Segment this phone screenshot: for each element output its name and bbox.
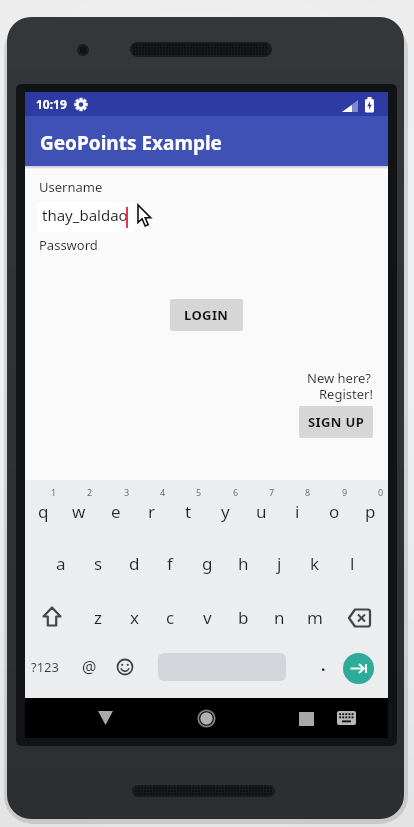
staticText: u [256,500,267,523]
staticText: 8 [305,486,311,498]
staticText: n [274,606,285,629]
staticText: j [277,552,282,575]
staticText: New here? [307,369,371,387]
staticText: i [295,500,300,523]
staticText: Register! [319,385,373,403]
staticText: 0 [378,486,384,498]
staticText: l [350,552,355,575]
staticText: r [148,500,156,523]
staticText: 7 [269,486,275,498]
staticText: 5 [196,486,202,498]
staticText: s [94,552,103,575]
button[interactable] [336,710,358,727]
staticText: Username [39,178,103,196]
staticText: b [238,606,249,629]
staticText: x [130,606,139,629]
staticText: f [167,552,173,575]
staticText: k [310,552,320,575]
staticText: t [185,500,192,523]
staticText: o [329,500,340,523]
staticText: Password [39,236,98,254]
staticText: 6 [233,486,239,498]
button[interactable]: LOGIN [170,299,243,331]
staticText: d [129,552,140,575]
staticText: e [111,500,121,523]
staticText: thay_baldao [42,205,128,225]
button[interactable]: q [25,480,388,698]
staticText: 4 [160,486,166,498]
staticText: GeoPoints Example [40,130,222,156]
staticText: q [38,500,49,523]
staticText: 10:19 [36,96,67,112]
staticText: @ [82,656,97,678]
staticText: c [166,606,175,629]
staticText: . [321,654,326,676]
button[interactable]: SIGN UP [299,406,373,438]
staticText: 9 [342,486,348,498]
button[interactable] [88,708,124,728]
staticText: a [56,552,66,575]
staticText: ?123 [31,658,59,676]
staticText: 1 [51,486,57,498]
staticText: m [307,606,323,629]
staticText: v [203,606,212,629]
staticText: 3 [124,486,130,498]
staticText: 2 [87,486,93,498]
staticText: SIGN UP [308,413,365,431]
staticText: y [221,500,230,523]
staticText: z [94,606,102,629]
staticText: p [365,500,376,523]
button[interactable] [193,705,220,732]
staticText: g [202,552,213,575]
staticText: h [238,552,249,575]
staticText: w [72,500,86,523]
staticText: LOGIN [184,306,229,324]
